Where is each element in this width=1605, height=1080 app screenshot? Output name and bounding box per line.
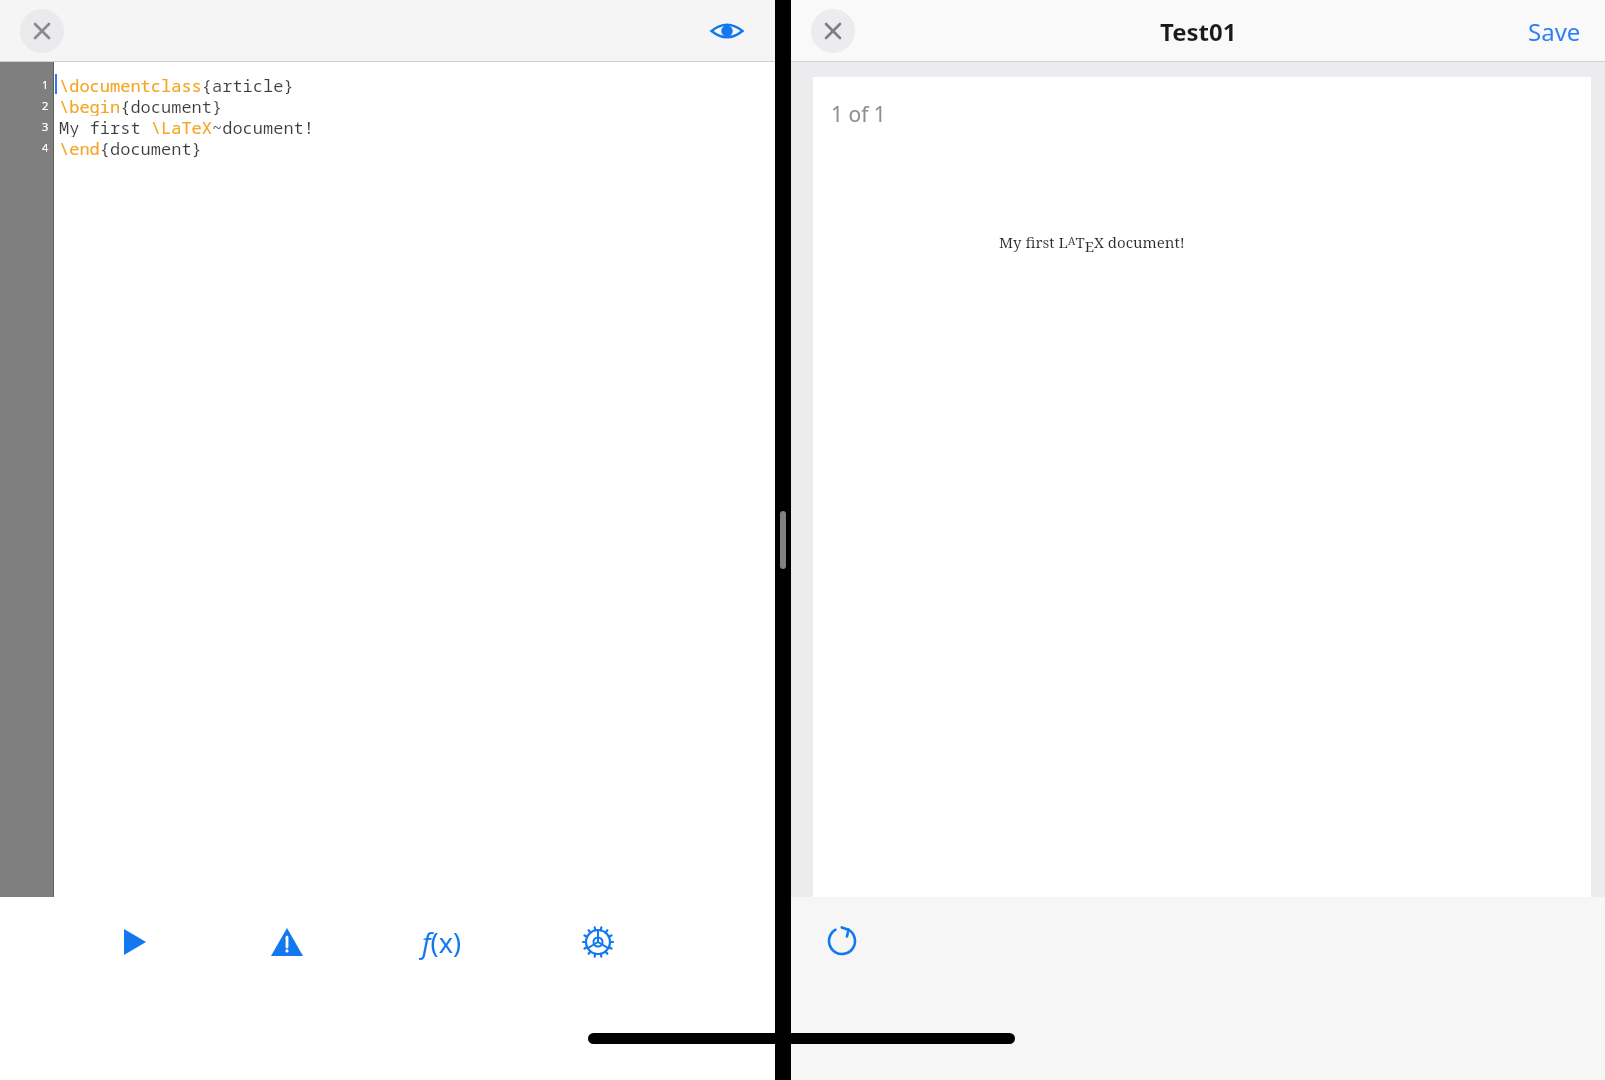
staticText: 1 xyxy=(42,77,49,92)
staticText: My first LATEX document! xyxy=(999,232,1185,256)
staticText: \end{document} xyxy=(59,137,202,158)
staticText: My first \LaTeX~document! xyxy=(59,116,314,137)
button[interactable]: Close editor xyxy=(20,9,64,53)
staticText: 3 xyxy=(42,119,49,134)
button[interactable]: Errors xyxy=(257,912,317,972)
staticText: Test01 xyxy=(1160,15,1237,48)
staticText: \begin{document} xyxy=(59,95,223,116)
button[interactable]: Settings xyxy=(567,911,629,973)
button[interactable]: Close preview xyxy=(811,9,855,53)
button[interactable]: Refresh preview xyxy=(807,905,877,975)
staticText: f(x) xyxy=(422,924,462,961)
button[interactable]: Toggle preview xyxy=(701,5,753,57)
button[interactable]: Run xyxy=(105,912,165,972)
staticText: \documentclass{article} xyxy=(59,74,294,95)
button[interactable]: Resize panes xyxy=(780,511,786,569)
staticText: 4 xyxy=(42,140,49,155)
button[interactable]: Insert function xyxy=(409,909,475,975)
button[interactable]: Save xyxy=(1520,7,1589,56)
staticText: 1 of 1 xyxy=(831,100,886,129)
staticText: 2 xyxy=(42,98,49,113)
staticText: Save xyxy=(1528,15,1581,48)
